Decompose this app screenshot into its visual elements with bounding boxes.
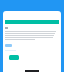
button[interactable] [5, 44, 12, 47]
button[interactable]: Action [9, 55, 19, 60]
